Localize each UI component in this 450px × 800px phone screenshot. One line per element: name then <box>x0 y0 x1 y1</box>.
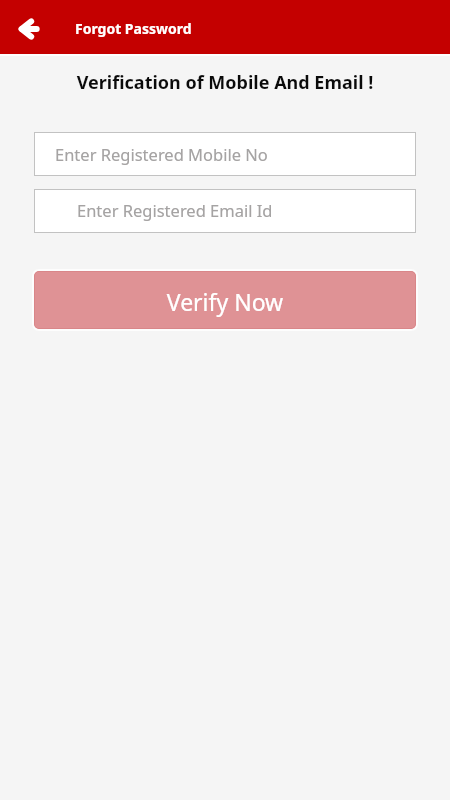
staticText: Verify Now <box>34 286 416 317</box>
button[interactable]: Enter Registered Mobile No <box>34 132 416 176</box>
button[interactable]: Verify Now <box>34 271 416 329</box>
staticText: Enter Registered Email Id <box>77 199 273 221</box>
button[interactable]: Back <box>11 11 47 47</box>
staticText: Forgot Password <box>75 19 192 38</box>
staticText: Enter Registered Mobile No <box>55 143 268 165</box>
button[interactable]: Enter Registered Email Id <box>34 189 416 233</box>
staticText: Verification of Mobile And Email ! <box>0 70 450 95</box>
